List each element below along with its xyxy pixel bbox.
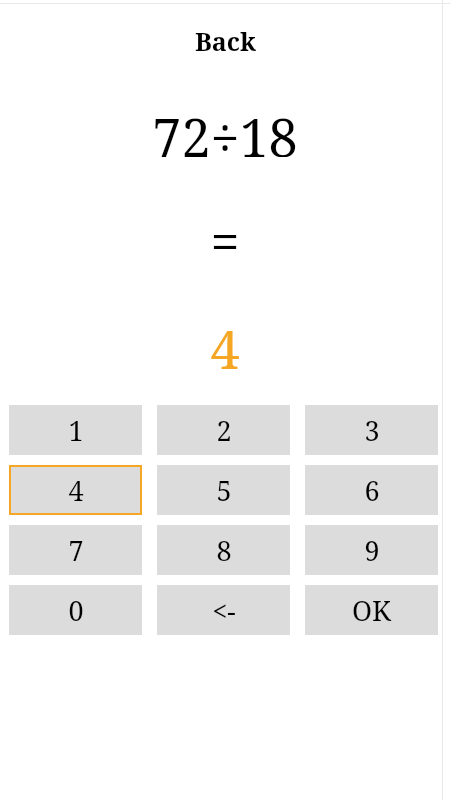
button[interactable]: 5: [157, 465, 290, 515]
staticText: <-: [212, 592, 236, 629]
button[interactable]: OK: [305, 585, 438, 635]
button[interactable]: 2: [157, 405, 290, 455]
staticText: OK: [352, 592, 391, 629]
button[interactable]: 8: [157, 525, 290, 575]
staticText: 72÷18: [152, 101, 298, 157]
button[interactable]: 7: [9, 525, 142, 575]
staticText: 7: [68, 532, 84, 569]
button[interactable]: 3: [305, 405, 438, 455]
button[interactable]: 0: [9, 585, 142, 635]
staticText: 9: [364, 532, 380, 569]
staticText: 6: [364, 472, 380, 509]
staticText: 5: [216, 472, 232, 509]
button[interactable]: Back: [170, 24, 280, 58]
button[interactable]: Backspace: [157, 585, 290, 635]
staticText: 4: [210, 313, 240, 369]
button[interactable]: 1: [9, 405, 142, 455]
button[interactable]: 9: [305, 525, 438, 575]
staticText: 8: [216, 532, 232, 569]
staticText: 4: [68, 472, 84, 509]
button[interactable]: 6: [305, 465, 438, 515]
staticText: Back: [195, 24, 256, 58]
staticText: 1: [68, 412, 84, 449]
button[interactable]: 4: [9, 465, 142, 515]
staticText: 2: [216, 412, 232, 449]
staticText: 0: [68, 592, 84, 629]
staticText: 3: [364, 412, 380, 449]
staticText: =: [210, 205, 240, 261]
